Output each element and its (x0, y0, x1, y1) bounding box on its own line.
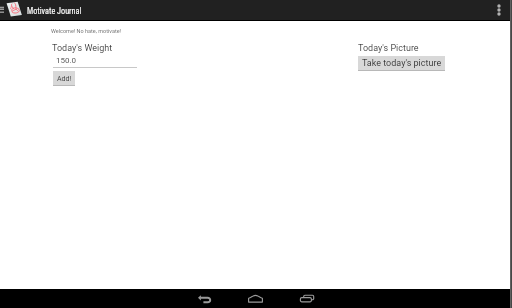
button[interactable]: More options (488, 0, 510, 20)
staticText: Add! (57, 75, 72, 83)
staticText: 150.0 (56, 56, 77, 65)
button[interactable]: Home (240, 289, 271, 308)
button[interactable]: Add! (53, 71, 75, 86)
button[interactable]: Take today's picture (358, 56, 445, 71)
staticText: Welcome! No hate, motivate! (51, 28, 122, 34)
staticText: Motivate Journal (27, 6, 82, 16)
staticText: Take today's picture (362, 58, 442, 69)
button[interactable]: Menu (0, 6, 4, 15)
button[interactable]: Recent apps (292, 289, 322, 308)
staticText: Today's Weight (52, 43, 113, 54)
button[interactable]: Back (190, 289, 220, 308)
staticText: Today's Picture (358, 43, 419, 54)
